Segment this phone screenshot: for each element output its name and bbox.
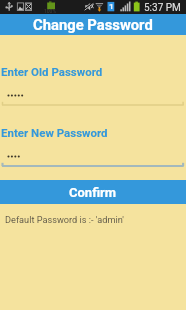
staticText: Default Password is :- 'admin' (5, 214, 124, 225)
staticText: Change Password (33, 16, 153, 33)
button[interactable]: Confirm (0, 180, 186, 204)
staticText: 5:37 PM (144, 2, 181, 14)
button[interactable] (0, 150, 186, 169)
staticText: Enter New Password (1, 126, 108, 139)
staticText: Enter Old Password (1, 65, 103, 78)
staticText: 100% (44, 8, 57, 14)
button[interactable]: Change Password (0, 14, 186, 35)
staticText: Confirm (69, 185, 117, 200)
button[interactable] (0, 89, 186, 108)
staticText: 1 (109, 2, 114, 11)
